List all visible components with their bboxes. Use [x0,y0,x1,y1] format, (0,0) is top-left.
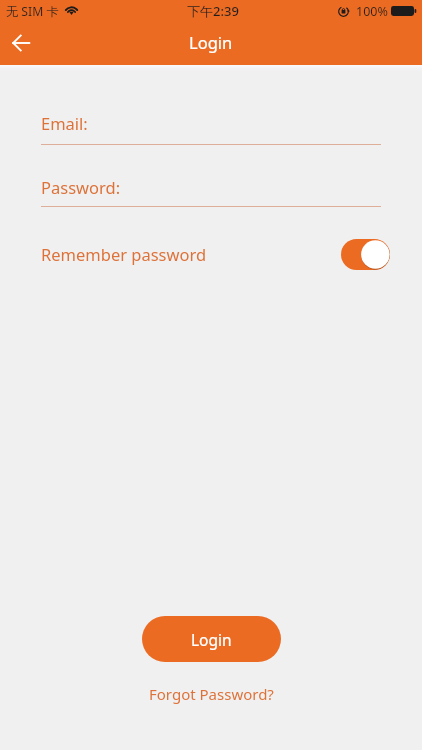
button[interactable]: Email: [41,106,381,145]
staticText: Forgot Password? [149,684,274,704]
button[interactable]: Forgot Password? [139,679,284,709]
button[interactable]: Remember password [41,238,390,270]
button[interactable]: Remember password toggle, on [341,239,390,270]
staticText: Login [189,31,233,53]
staticText: Password: [41,176,121,198]
staticText: Remember password [41,243,207,265]
staticText: 无 SIM 卡 [6,3,59,20]
staticText: 100% [356,3,388,20]
staticText: 下午2:39 [187,2,239,20]
button[interactable]: Password: [41,170,381,207]
button[interactable]: Login [142,616,281,662]
staticText: Email: [41,112,88,134]
staticText: Login [191,629,232,650]
button[interactable]: Back [0,22,43,65]
